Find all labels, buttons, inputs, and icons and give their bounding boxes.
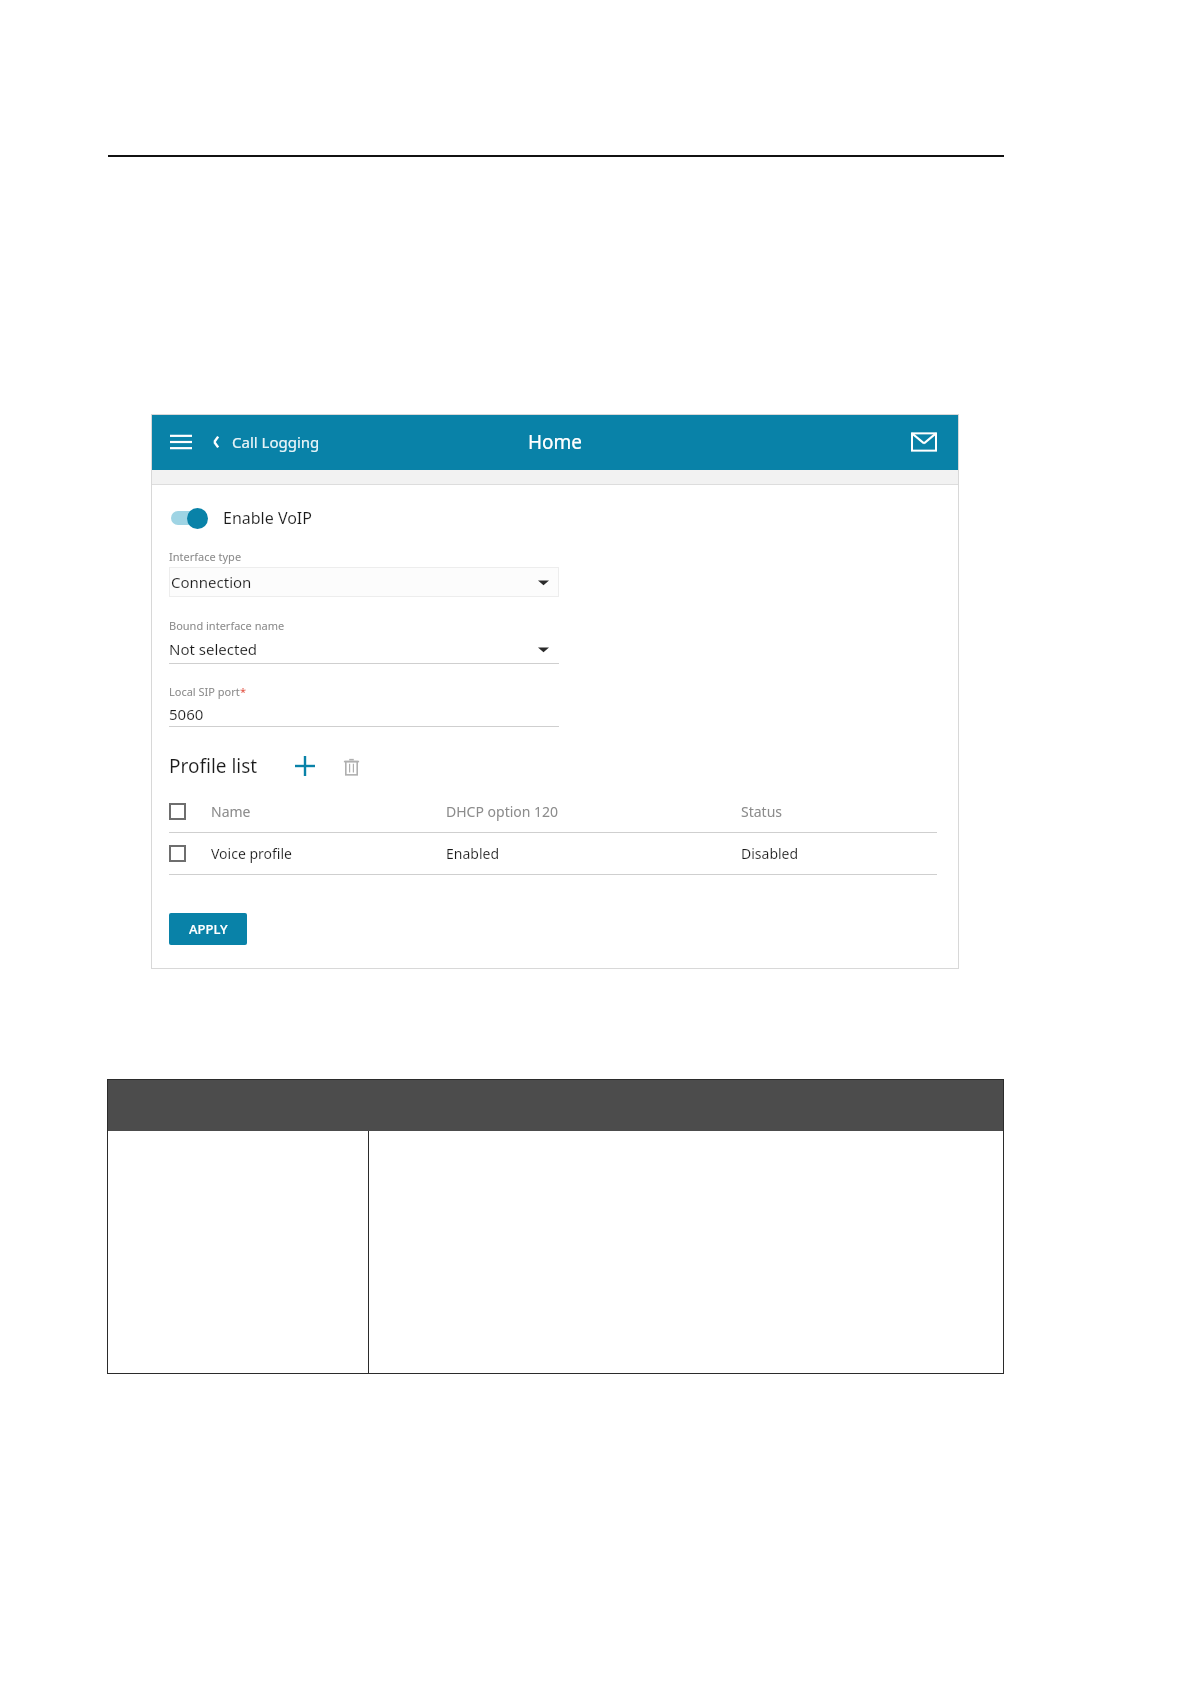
staticText: Enable VoIP — [223, 507, 312, 529]
button[interactable]: Enable VoIP — [169, 507, 312, 529]
staticText: Enabled — [446, 844, 500, 863]
button[interactable]: Connection — [169, 567, 559, 597]
button[interactable]: Delete profile — [334, 749, 368, 783]
button[interactable]: Voice profile — [169, 833, 941, 874]
staticText: Not selected — [169, 639, 258, 659]
staticText: Interface type — [169, 549, 242, 564]
staticText: APPLY — [189, 920, 228, 938]
staticText: Disabled — [741, 844, 799, 863]
staticText: Status — [741, 802, 783, 821]
staticText: Connection — [171, 572, 252, 592]
button[interactable]: Call Logging — [207, 432, 320, 452]
staticText: Local SIP port — [169, 684, 240, 699]
button[interactable]: Add profile — [288, 749, 322, 783]
button[interactable]: Messages — [903, 421, 945, 463]
staticText: DHCP option 120 — [446, 802, 559, 821]
staticText: * — [240, 684, 247, 699]
staticText: 5060 — [169, 704, 204, 724]
button[interactable]: Name — [169, 791, 941, 832]
staticText: Name — [211, 802, 251, 821]
staticText: Voice profile — [211, 844, 292, 863]
staticText: Call Logging — [232, 432, 320, 452]
staticText: Profile list — [169, 753, 258, 779]
button[interactable]: Menu — [159, 420, 203, 464]
staticText: Home — [528, 429, 583, 455]
button[interactable]: APPLY — [169, 913, 247, 945]
button[interactable]: Not selected — [169, 635, 559, 663]
staticText: Bound interface name — [169, 618, 285, 633]
